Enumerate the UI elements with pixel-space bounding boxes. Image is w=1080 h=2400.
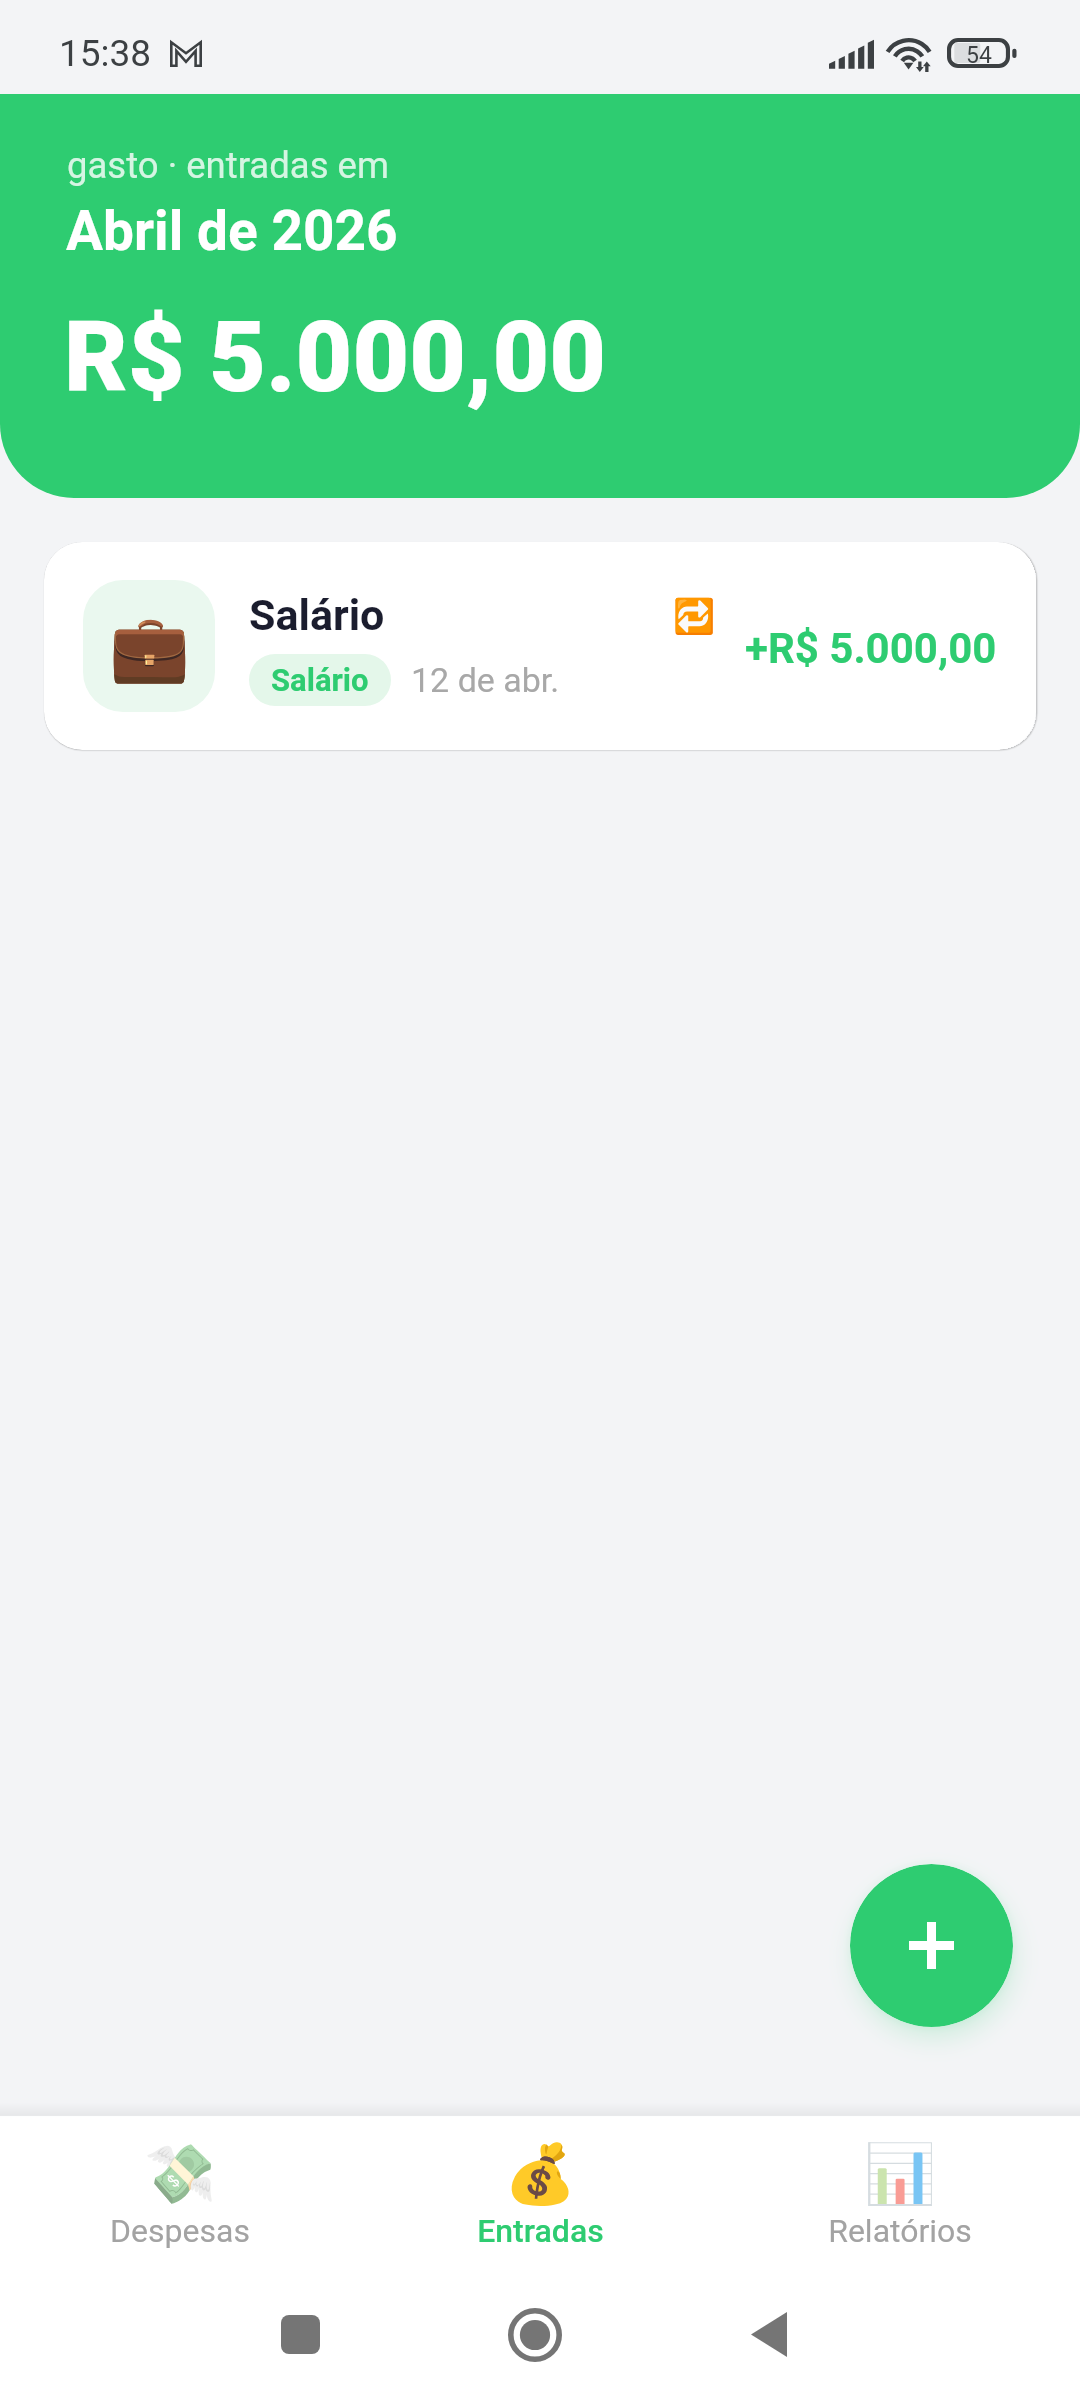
staticText: Salário: [249, 590, 385, 640]
button[interactable]: Back: [751, 2312, 787, 2357]
button[interactable]: 💰: [360, 2116, 720, 2276]
staticText: Abril de 2026: [66, 199, 398, 263]
staticText: 💼: [109, 610, 190, 686]
staticText: 12 de abr.: [411, 660, 560, 700]
button[interactable]: 💸: [0, 2116, 360, 2276]
staticText: +R$ 5.000,00: [745, 624, 997, 673]
button[interactable]: Recents: [281, 2315, 320, 2354]
staticText: 54: [966, 42, 992, 69]
staticText: Entradas: [477, 2212, 604, 2250]
staticText: Relatórios: [828, 2212, 972, 2250]
staticText: 💸: [144, 2140, 217, 2208]
staticText: 📊: [864, 2140, 937, 2208]
staticText: Salário: [271, 662, 369, 698]
staticText: R$ 5.000,00: [64, 300, 607, 415]
button[interactable]: Home: [508, 2308, 562, 2362]
staticText: 💰: [504, 2140, 577, 2208]
staticText: 🔁: [673, 596, 716, 636]
button[interactable]: Adicionar: [850, 1864, 1013, 2027]
button[interactable]: 📊: [720, 2116, 1080, 2276]
button[interactable]: 💼: [44, 542, 1036, 750]
staticText: 15:38: [59, 32, 152, 75]
staticText: gasto · entradas em: [67, 144, 389, 187]
staticText: Despesas: [110, 2212, 250, 2250]
